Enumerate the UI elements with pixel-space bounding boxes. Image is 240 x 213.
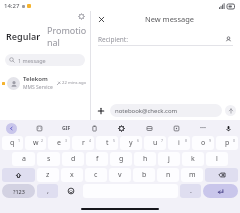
button[interactable]: f <box>86 152 108 166</box>
button[interactable]: Add contact <box>223 34 233 44</box>
staticText: 7 <box>161 138 164 143</box>
button[interactable]: h <box>134 152 156 166</box>
button[interactable]: c <box>85 168 107 182</box>
button[interactable]: Clipboard <box>89 123 100 134</box>
button[interactable]: . <box>180 184 201 198</box>
button[interactable]: o <box>192 136 214 150</box>
button[interactable]: b <box>133 168 155 182</box>
button[interactable]: i <box>168 136 190 150</box>
button[interactable]: s <box>37 152 60 166</box>
staticText: 0 <box>233 138 236 143</box>
button[interactable]: j <box>158 152 180 166</box>
button[interactable]: Shift <box>2 168 35 182</box>
button[interactable]: Telekom <box>0 73 90 93</box>
button[interactable]: Backspace <box>205 168 238 182</box>
staticText: i <box>178 138 180 148</box>
button[interactable]: e <box>48 136 70 150</box>
staticText: 9 <box>209 138 212 143</box>
button[interactable]: GIF <box>61 124 72 133</box>
button[interactable]: Regular <box>5 29 42 43</box>
button[interactable]: x <box>61 168 83 182</box>
staticText: MMS Service <box>23 84 53 91</box>
staticText: m <box>189 170 196 180</box>
staticText: ?123 <box>13 188 25 195</box>
staticText: 4 <box>89 138 92 143</box>
button[interactable]: More <box>199 122 207 134</box>
staticText: l <box>216 154 218 164</box>
button[interactable]: Sticker <box>34 123 45 134</box>
staticText: 8 <box>185 138 188 143</box>
staticText: h <box>143 154 148 164</box>
button[interactable]: , <box>37 184 58 198</box>
button[interactable]: Settings <box>116 123 127 134</box>
staticText: New message <box>145 14 195 24</box>
staticText: n <box>166 170 171 180</box>
staticText: j <box>168 154 170 164</box>
button[interactable]: Close <box>96 14 107 25</box>
staticText: r <box>82 138 85 148</box>
staticText: Regular <box>6 30 41 42</box>
button[interactable]: k <box>182 152 204 166</box>
staticText: 1 <box>18 138 21 143</box>
button[interactable]: notebook@check.com <box>110 104 222 117</box>
button[interactable]: Emoji <box>60 184 81 198</box>
button[interactable]: Send <box>225 105 236 116</box>
staticText: notebook@check.com <box>115 107 178 115</box>
staticText: , <box>47 186 49 196</box>
button[interactable]: t <box>96 136 118 150</box>
staticText: q <box>10 138 15 148</box>
staticText: Promotional <box>47 24 89 48</box>
button[interactable]: ?123 <box>2 184 35 198</box>
button[interactable]: q <box>2 136 23 150</box>
staticText: t <box>106 138 109 148</box>
button[interactable]: Voice input <box>223 123 234 134</box>
button[interactable]: Enter <box>203 184 238 198</box>
staticText: Recipient: <box>98 35 223 44</box>
button[interactable]: y <box>120 136 142 150</box>
staticText: Telekom <box>23 75 48 83</box>
staticText: p <box>225 138 230 148</box>
staticText: e <box>57 138 61 148</box>
staticText: g <box>119 154 124 164</box>
staticText: x <box>70 170 74 180</box>
button[interactable]: Translate <box>144 123 155 134</box>
button[interactable]: m <box>181 168 203 182</box>
button[interactable]: p <box>216 136 238 150</box>
staticText: a <box>22 154 26 164</box>
staticText: 22 mins ago <box>62 80 87 86</box>
button[interactable]: Promotional <box>46 23 90 49</box>
button[interactable]: Add attachment <box>95 105 107 117</box>
button[interactable]: w <box>25 136 46 150</box>
button[interactable]: Expand <box>6 123 17 134</box>
button[interactable]: Settings <box>77 12 86 21</box>
staticText: 6 <box>137 138 140 143</box>
staticText: d <box>71 154 76 164</box>
button[interactable]: 1 message <box>5 54 85 66</box>
button[interactable]: l <box>206 152 228 166</box>
button[interactable]: a <box>12 152 35 166</box>
staticText: . <box>190 186 192 196</box>
button[interactable]: v <box>109 168 131 182</box>
staticText: v <box>118 170 122 180</box>
staticText: s <box>47 154 51 164</box>
staticText: GIF <box>62 125 71 132</box>
button[interactable]: d <box>62 152 84 166</box>
staticText: w <box>33 138 39 148</box>
staticText: 1 message <box>18 57 46 64</box>
button[interactable]: Emoji <box>171 123 182 134</box>
staticText: b <box>142 170 147 180</box>
staticText: u <box>153 138 158 148</box>
button[interactable]: u <box>144 136 166 150</box>
button[interactable]: r <box>72 136 94 150</box>
staticText: 5 <box>113 138 116 143</box>
staticText: z <box>46 170 50 180</box>
staticText: 3 <box>65 138 68 143</box>
button[interactable]: n <box>157 168 179 182</box>
button[interactable]: z <box>37 168 59 182</box>
button[interactable]: g <box>110 152 132 166</box>
staticText: ··· <box>200 123 206 133</box>
staticText: 14:27 <box>4 2 20 10</box>
staticText: y <box>129 138 133 148</box>
staticText: k <box>191 154 195 164</box>
